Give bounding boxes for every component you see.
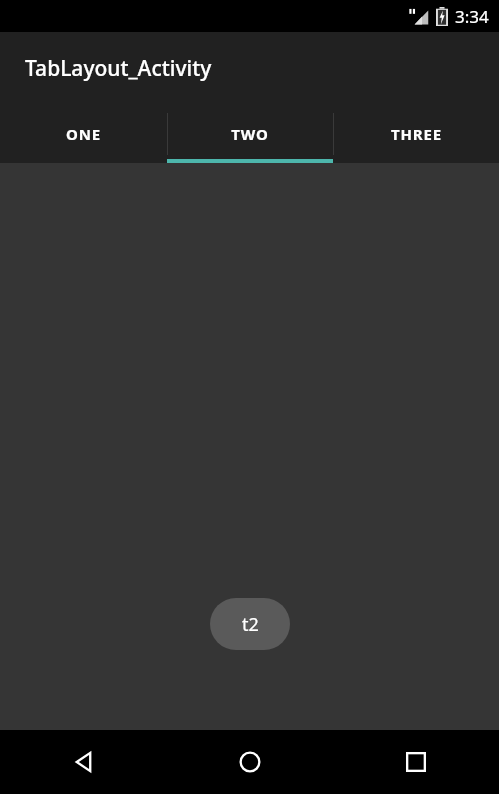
button[interactable]: TWO xyxy=(167,105,333,163)
button[interactable]: Back xyxy=(0,730,167,794)
button[interactable]: ONE xyxy=(0,105,167,163)
staticText: TWO xyxy=(231,124,269,144)
staticText: 3:34 xyxy=(455,5,489,28)
staticText: THREE xyxy=(391,124,442,144)
button[interactable]: THREE xyxy=(333,105,499,163)
staticText: ONE xyxy=(66,124,101,144)
button[interactable]: Home xyxy=(167,730,333,794)
button[interactable]: t2 xyxy=(210,598,290,650)
staticText: TabLayout_Activity xyxy=(25,54,212,83)
button[interactable]: Recent apps xyxy=(333,730,499,794)
staticText: t2 xyxy=(242,612,259,637)
